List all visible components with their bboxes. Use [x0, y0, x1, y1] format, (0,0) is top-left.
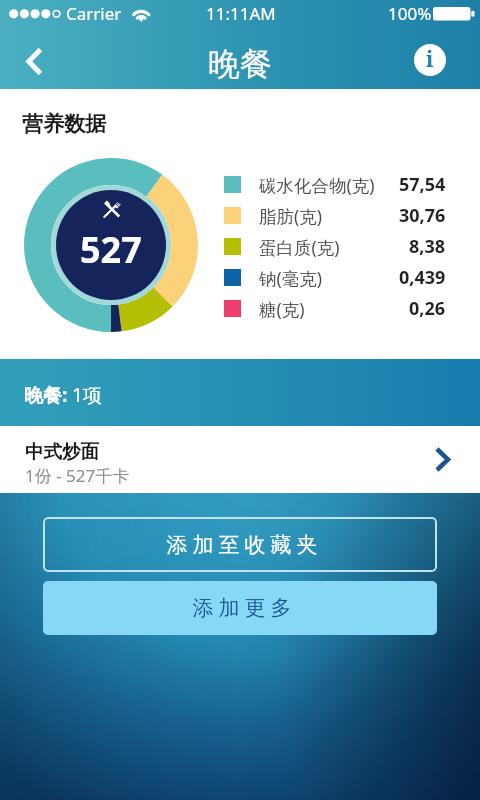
- staticText: 中式炒面: [25, 440, 99, 463]
- staticText: 晚餐: [208, 44, 272, 84]
- staticText: Carrier: [66, 2, 122, 25]
- staticText: 脂肪(克): [259, 204, 322, 228]
- staticText: 添加至收藏夹: [164, 532, 320, 558]
- staticText: 钠(毫克): [259, 266, 322, 290]
- staticText: 57,54: [399, 172, 446, 197]
- staticText: 营养数据: [22, 111, 106, 137]
- staticText: 添加更多: [190, 595, 294, 621]
- staticText: 1份 - 527千卡: [25, 464, 130, 487]
- button[interactable]: Back: [12, 39, 56, 83]
- staticText: 8,38: [409, 234, 446, 259]
- staticText: 糖(克): [259, 297, 305, 321]
- button[interactable]: 中式炒面: [0, 426, 480, 493]
- staticText: 蛋白质(克): [259, 235, 340, 259]
- staticText: 30,76: [399, 203, 446, 228]
- button[interactable]: Info: [410, 40, 450, 80]
- staticText: 碳水化合物(克): [259, 173, 375, 197]
- button[interactable]: 添加至收藏夹: [43, 517, 437, 572]
- staticText: 100%: [388, 2, 432, 25]
- staticText: 晚餐:: [24, 382, 68, 408]
- staticText: 11:11AM: [206, 2, 276, 25]
- staticText: 0,26: [409, 296, 446, 321]
- staticText: i: [426, 45, 434, 74]
- staticText: 1项: [72, 382, 102, 408]
- staticText: 0,439: [399, 265, 446, 290]
- button[interactable]: 添加更多: [43, 581, 437, 635]
- staticText: 527: [80, 225, 142, 274]
